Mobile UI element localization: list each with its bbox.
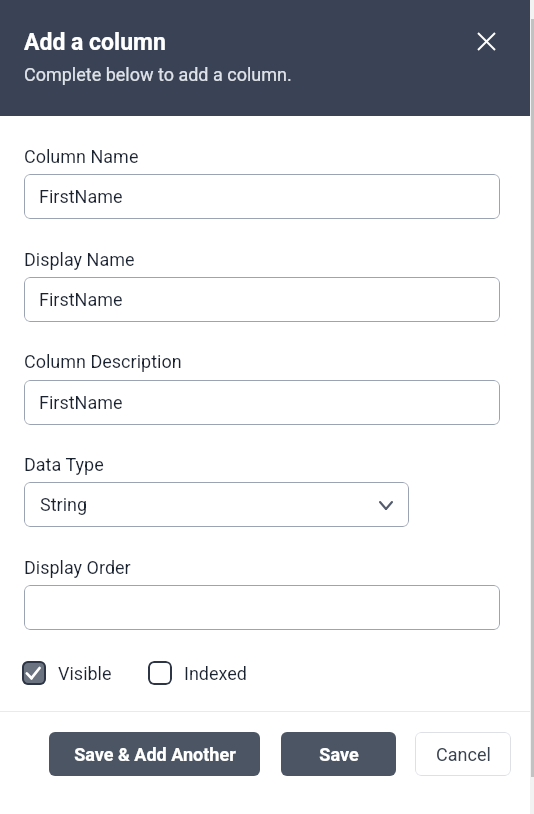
button[interactable]: Indexed xyxy=(148,661,247,685)
staticText: FirstName xyxy=(39,289,123,310)
button[interactable]: FirstName xyxy=(24,174,500,219)
staticText: Column Description xyxy=(24,351,182,372)
staticText: Column Name xyxy=(24,146,139,167)
staticText: Display Name xyxy=(24,249,135,270)
button[interactable]: Visible xyxy=(22,661,112,685)
staticText: Indexed xyxy=(184,663,247,684)
staticText: Visible xyxy=(58,663,112,684)
staticText: Display Order xyxy=(24,557,131,578)
button[interactable]: FirstName xyxy=(24,277,500,322)
staticText: Cancel xyxy=(436,744,491,765)
button[interactable]: Cancel xyxy=(415,732,511,776)
staticText: FirstName xyxy=(39,392,123,413)
staticText: Save & Add Another xyxy=(74,744,236,765)
staticText: Save xyxy=(319,744,359,765)
staticText: FirstName xyxy=(39,186,123,207)
button[interactable]: FirstName xyxy=(24,380,500,425)
button[interactable]: Close xyxy=(469,24,503,58)
staticText: Add a column xyxy=(24,29,166,56)
button[interactable]: Save & Add Another xyxy=(49,732,260,776)
staticText: String xyxy=(40,494,88,515)
button[interactable]: Save xyxy=(281,732,396,776)
staticText: Data Type xyxy=(24,454,104,475)
button[interactable]: String xyxy=(24,482,409,527)
staticText: Complete below to add a column. xyxy=(24,64,292,85)
button[interactable] xyxy=(24,585,500,630)
